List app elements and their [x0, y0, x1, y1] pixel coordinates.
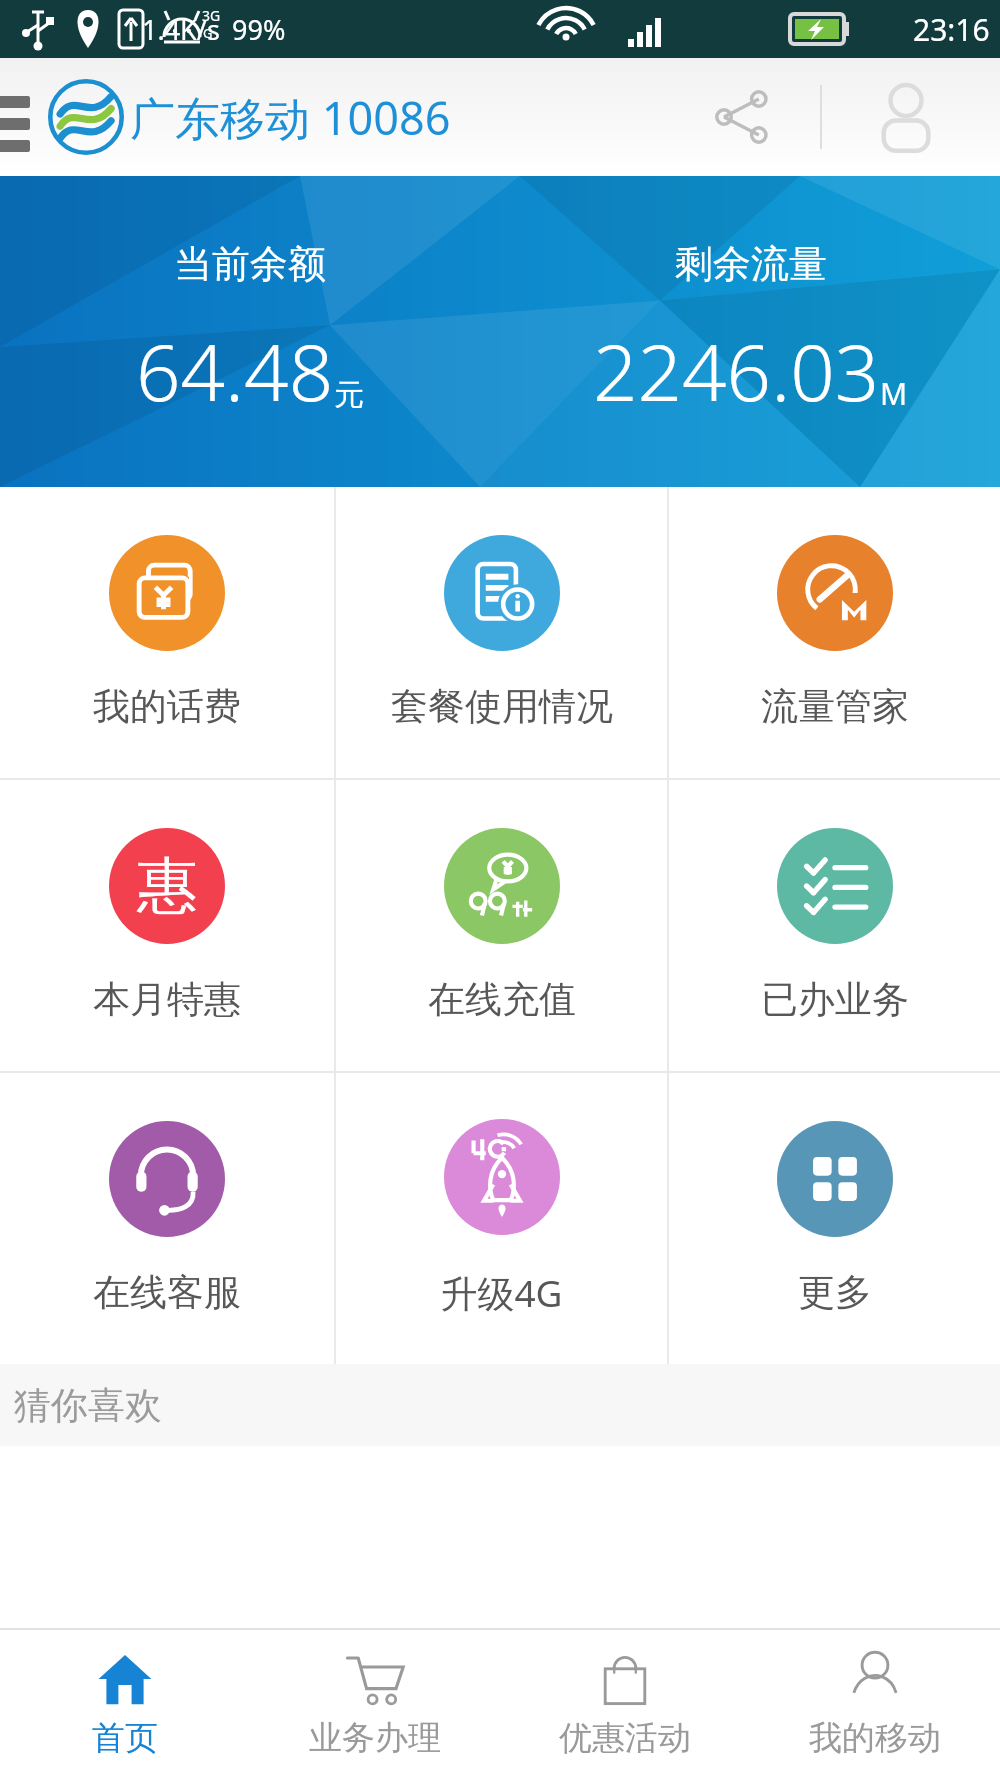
button[interactable]: 在线客服 [0, 1073, 334, 1364]
button[interactable]: 惠 [0, 780, 334, 1071]
button[interactable]: 当前余额 [0, 176, 500, 487]
staticText: 惠 [137, 848, 197, 924]
staticText: 剩余流量 [675, 240, 827, 288]
staticText: 99% [232, 11, 286, 48]
staticText: 在线客服 [93, 1269, 241, 1316]
button[interactable]: 在线充值 [336, 780, 667, 1071]
button[interactable]: 已办业务 [669, 780, 1000, 1071]
button[interactable]: 业务办理 [250, 1630, 500, 1778]
staticText: 23:16 [913, 9, 990, 50]
staticText: 广东移动 10086 [130, 87, 451, 148]
button[interactable]: 更多 [669, 1073, 1000, 1364]
staticText: M [880, 373, 908, 414]
button[interactable]: 剩余流量 [500, 176, 1000, 487]
button[interactable]: 流量管家 [669, 487, 1000, 778]
staticText: 我的移动 [809, 1717, 941, 1759]
staticText: 1.4K/s [142, 11, 220, 48]
staticText: 升级4G [440, 1267, 563, 1318]
staticText: 我的话费 [93, 683, 241, 730]
staticText: 业务办理 [309, 1717, 441, 1759]
button[interactable]: 优惠活动 [500, 1630, 750, 1778]
staticText: 首页 [92, 1717, 158, 1759]
button[interactable]: 套餐使用情况 [336, 487, 667, 778]
button[interactable]: Share [699, 74, 785, 160]
staticText: 在线充值 [428, 976, 576, 1023]
staticText: 本月特惠 [93, 976, 241, 1023]
staticText: 64.48 [136, 318, 334, 424]
staticText: 更多 [798, 1269, 872, 1316]
staticText: 元 [334, 376, 364, 414]
button[interactable]: Menu [0, 82, 40, 152]
staticText: 已办业务 [761, 976, 909, 1023]
button[interactable]: Profile [860, 71, 952, 163]
button[interactable]: 猜你喜欢 [0, 1364, 1000, 1446]
staticText: 优惠活动 [559, 1717, 691, 1759]
staticText: G [203, 24, 213, 42]
staticText: 套餐使用情况 [391, 683, 613, 730]
staticText: 猜你喜欢 [14, 1382, 162, 1429]
staticText: 当前余额 [174, 240, 326, 288]
staticText: 流量管家 [761, 683, 909, 730]
staticText: 2246.03 [593, 318, 880, 424]
button[interactable]: 我的移动 [750, 1630, 1000, 1778]
button[interactable]: 升级4G [336, 1073, 667, 1364]
button[interactable]: 我的话费 [0, 487, 334, 778]
button[interactable]: 首页 [0, 1630, 250, 1778]
staticText: 3G [202, 6, 221, 25]
